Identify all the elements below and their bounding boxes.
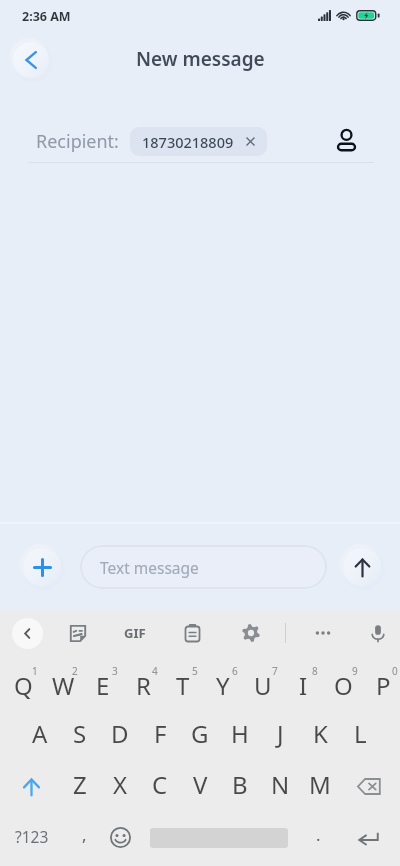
staticText: W (52, 669, 75, 702)
button[interactable]: K (300, 708, 340, 759)
button[interactable]: U (240, 656, 280, 708)
staticText: D (111, 717, 129, 750)
staticText: 0 (392, 664, 398, 678)
button[interactable]: Enter (346, 810, 390, 866)
staticText: 7 (272, 664, 278, 678)
button[interactable]: Back (13, 42, 49, 78)
other: Settings (242, 623, 260, 643)
staticText: , (82, 823, 87, 846)
button[interactable]: Send (343, 548, 381, 586)
button[interactable]: R (120, 656, 160, 708)
button[interactable]: V (180, 759, 220, 810)
staticText: 2:36 AM (22, 8, 71, 25)
button[interactable]: G (180, 708, 220, 759)
staticText: 3 (112, 664, 118, 678)
staticText: ?123 (15, 826, 49, 847)
other: More options (313, 623, 333, 643)
staticText: Y (216, 669, 230, 702)
staticText: P (376, 669, 391, 702)
button[interactable]: Z (60, 759, 100, 810)
button[interactable]: GIF (119, 617, 151, 649)
staticText: F (154, 717, 167, 750)
button[interactable]: Y (200, 656, 240, 708)
button[interactable]: O (320, 656, 360, 708)
button[interactable]: Close toolbar (12, 618, 43, 649)
staticText: GIF (124, 624, 146, 642)
button[interactable]: Add attachment (23, 548, 61, 586)
button[interactable]: X (100, 759, 140, 810)
staticText: C (152, 768, 168, 801)
staticText: A (32, 717, 48, 750)
button[interactable]: D (100, 708, 140, 759)
staticText: 6 (232, 664, 238, 678)
staticText: 9 (352, 664, 358, 678)
button[interactable]: , (68, 810, 100, 866)
button[interactable]: Emoji (104, 822, 136, 854)
button[interactable]: F (140, 708, 180, 759)
staticText: J (277, 717, 284, 750)
staticText: 8 (312, 664, 318, 678)
button[interactable]: Choose contact (328, 126, 364, 156)
staticText: S (73, 717, 87, 750)
button[interactable]: ?123 (8, 810, 53, 866)
button[interactable]: More options (307, 610, 339, 656)
button[interactable]: T (160, 656, 200, 708)
button[interactable]: Clipboard (176, 610, 208, 656)
button[interactable]: E (80, 656, 120, 708)
staticText: L (354, 717, 367, 750)
staticText: R (136, 669, 151, 702)
staticText: Q (14, 669, 33, 702)
staticText: 5 (192, 664, 198, 678)
staticText: X (113, 768, 128, 801)
staticText: G (191, 717, 209, 750)
staticText: O (334, 669, 353, 702)
button[interactable]: Shift (0, 759, 60, 810)
button[interactable]: Backspace (340, 759, 400, 810)
button[interactable]: A (20, 708, 60, 759)
button[interactable]: Text message (80, 545, 327, 589)
staticText: . (316, 823, 321, 846)
staticText: H (231, 717, 249, 750)
staticText: New message (136, 46, 265, 72)
staticText: 1 (32, 664, 38, 678)
staticText: N (271, 768, 290, 801)
button[interactable]: H (220, 708, 260, 759)
staticText: T (176, 669, 190, 702)
button[interactable]: . (302, 810, 334, 866)
button[interactable]: C (140, 759, 180, 810)
staticText: U (254, 669, 272, 702)
other: Clipboard (184, 624, 201, 643)
staticText: Text message (100, 557, 199, 578)
button[interactable]: B (220, 759, 260, 810)
button[interactable]: J (260, 708, 300, 759)
staticText: 4 (152, 664, 158, 678)
button[interactable]: M (300, 759, 340, 810)
button[interactable]: Q (0, 656, 40, 708)
staticText: B (232, 768, 248, 801)
button[interactable]: Settings (235, 610, 267, 656)
button[interactable]: Stickers (62, 610, 94, 656)
button[interactable]: P (360, 656, 400, 708)
other: Stickers (69, 624, 87, 643)
staticText: M (309, 768, 331, 801)
staticText: V (193, 768, 208, 801)
button[interactable]: N (260, 759, 300, 810)
button[interactable]: Voice input (362, 610, 394, 656)
button[interactable]: L (340, 708, 380, 759)
button[interactable]: W (40, 656, 80, 708)
button[interactable]: 18730218809 (130, 127, 267, 156)
staticText: 2 (72, 664, 78, 678)
button[interactable]: S (60, 708, 100, 759)
staticText: E (96, 669, 110, 702)
staticText: Recipient: (36, 129, 119, 154)
button[interactable]: I (280, 656, 320, 708)
staticText: I (299, 669, 308, 702)
staticText: 18730218809 (142, 132, 234, 152)
staticText: K (313, 717, 328, 750)
other: Voice input (370, 624, 386, 643)
staticText: Z (73, 768, 87, 801)
